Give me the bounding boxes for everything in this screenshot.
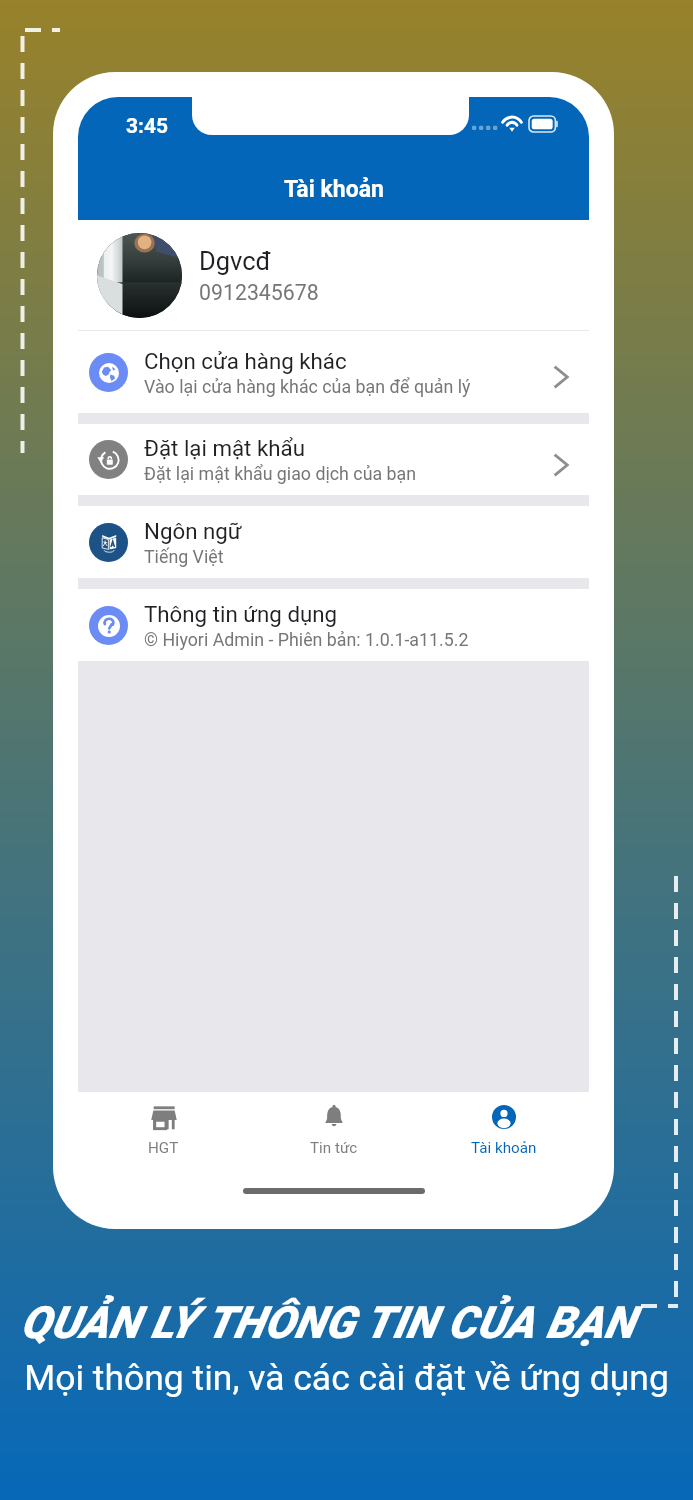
staticText: 3:45 [126,114,169,139]
button[interactable]: Tin tức [249,1092,419,1167]
button[interactable]: Thông tin ứng dụng [78,589,589,661]
staticText: Thông tin ứng dụng [144,601,338,627]
button[interactable]: HGT [78,1092,249,1167]
staticText: Tin tức [310,1139,358,1157]
staticText: Ngôn ngữ [144,518,242,544]
button[interactable]: Dgvcđ [78,220,589,330]
button[interactable]: Chọn cửa hàng khác [78,331,589,413]
staticText: 0912345678 [199,280,319,305]
staticText: Chọn cửa hàng khác [144,348,347,374]
staticText: Tài khoản [284,176,384,203]
staticText: © Hiyori Admin - Phiên bản: 1.0.1-a11.5.… [144,629,469,650]
staticText: Mọi thông tin, và các cài đặt về ứng dụn… [24,1357,669,1399]
staticText: Dgvcđ [199,246,271,276]
button[interactable]: Ngôn ngữ [78,506,589,578]
staticText: Tiếng Việt [144,546,224,567]
staticText: Vào lại cửa hàng khác của bạn để quản lý [144,376,471,397]
button[interactable]: Tài khoản [419,1092,589,1167]
button[interactable]: Đặt lại mật khẩu [78,424,589,495]
staticText: Tài khoản [471,1139,537,1157]
staticText: QUẢN LÝ THÔNG TIN CỦA BẠN [20,1297,635,1349]
staticText: Đặt lại mật khẩu [144,435,305,461]
staticText: HGT [148,1139,179,1157]
staticText: Đặt lại mật khẩu giao dịch của bạn [144,463,417,484]
